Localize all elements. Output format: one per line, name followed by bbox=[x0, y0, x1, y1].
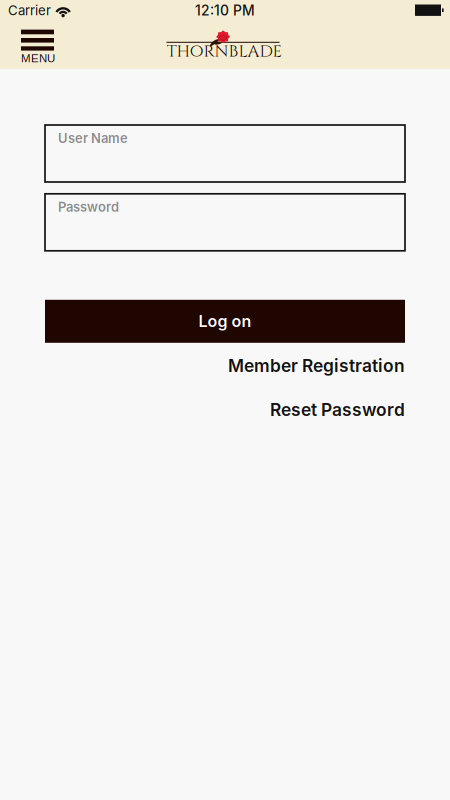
staticText: Password bbox=[58, 199, 119, 215]
staticText: MENU bbox=[21, 52, 55, 65]
button[interactable]: Member Registration bbox=[45, 351, 405, 381]
staticText: 12:10 PM bbox=[195, 2, 255, 19]
staticText: User Name bbox=[58, 130, 128, 146]
staticText: Log on bbox=[198, 312, 251, 331]
staticText: Member Registration bbox=[228, 355, 405, 376]
staticText: Carrier bbox=[8, 2, 51, 18]
button[interactable]: Reset Password bbox=[45, 395, 405, 425]
button[interactable]: Menu bbox=[21, 26, 69, 63]
staticText: THORNBLADE bbox=[166, 40, 282, 63]
staticText: Reset Password bbox=[270, 399, 405, 420]
button[interactable]: Log on bbox=[45, 300, 405, 343]
